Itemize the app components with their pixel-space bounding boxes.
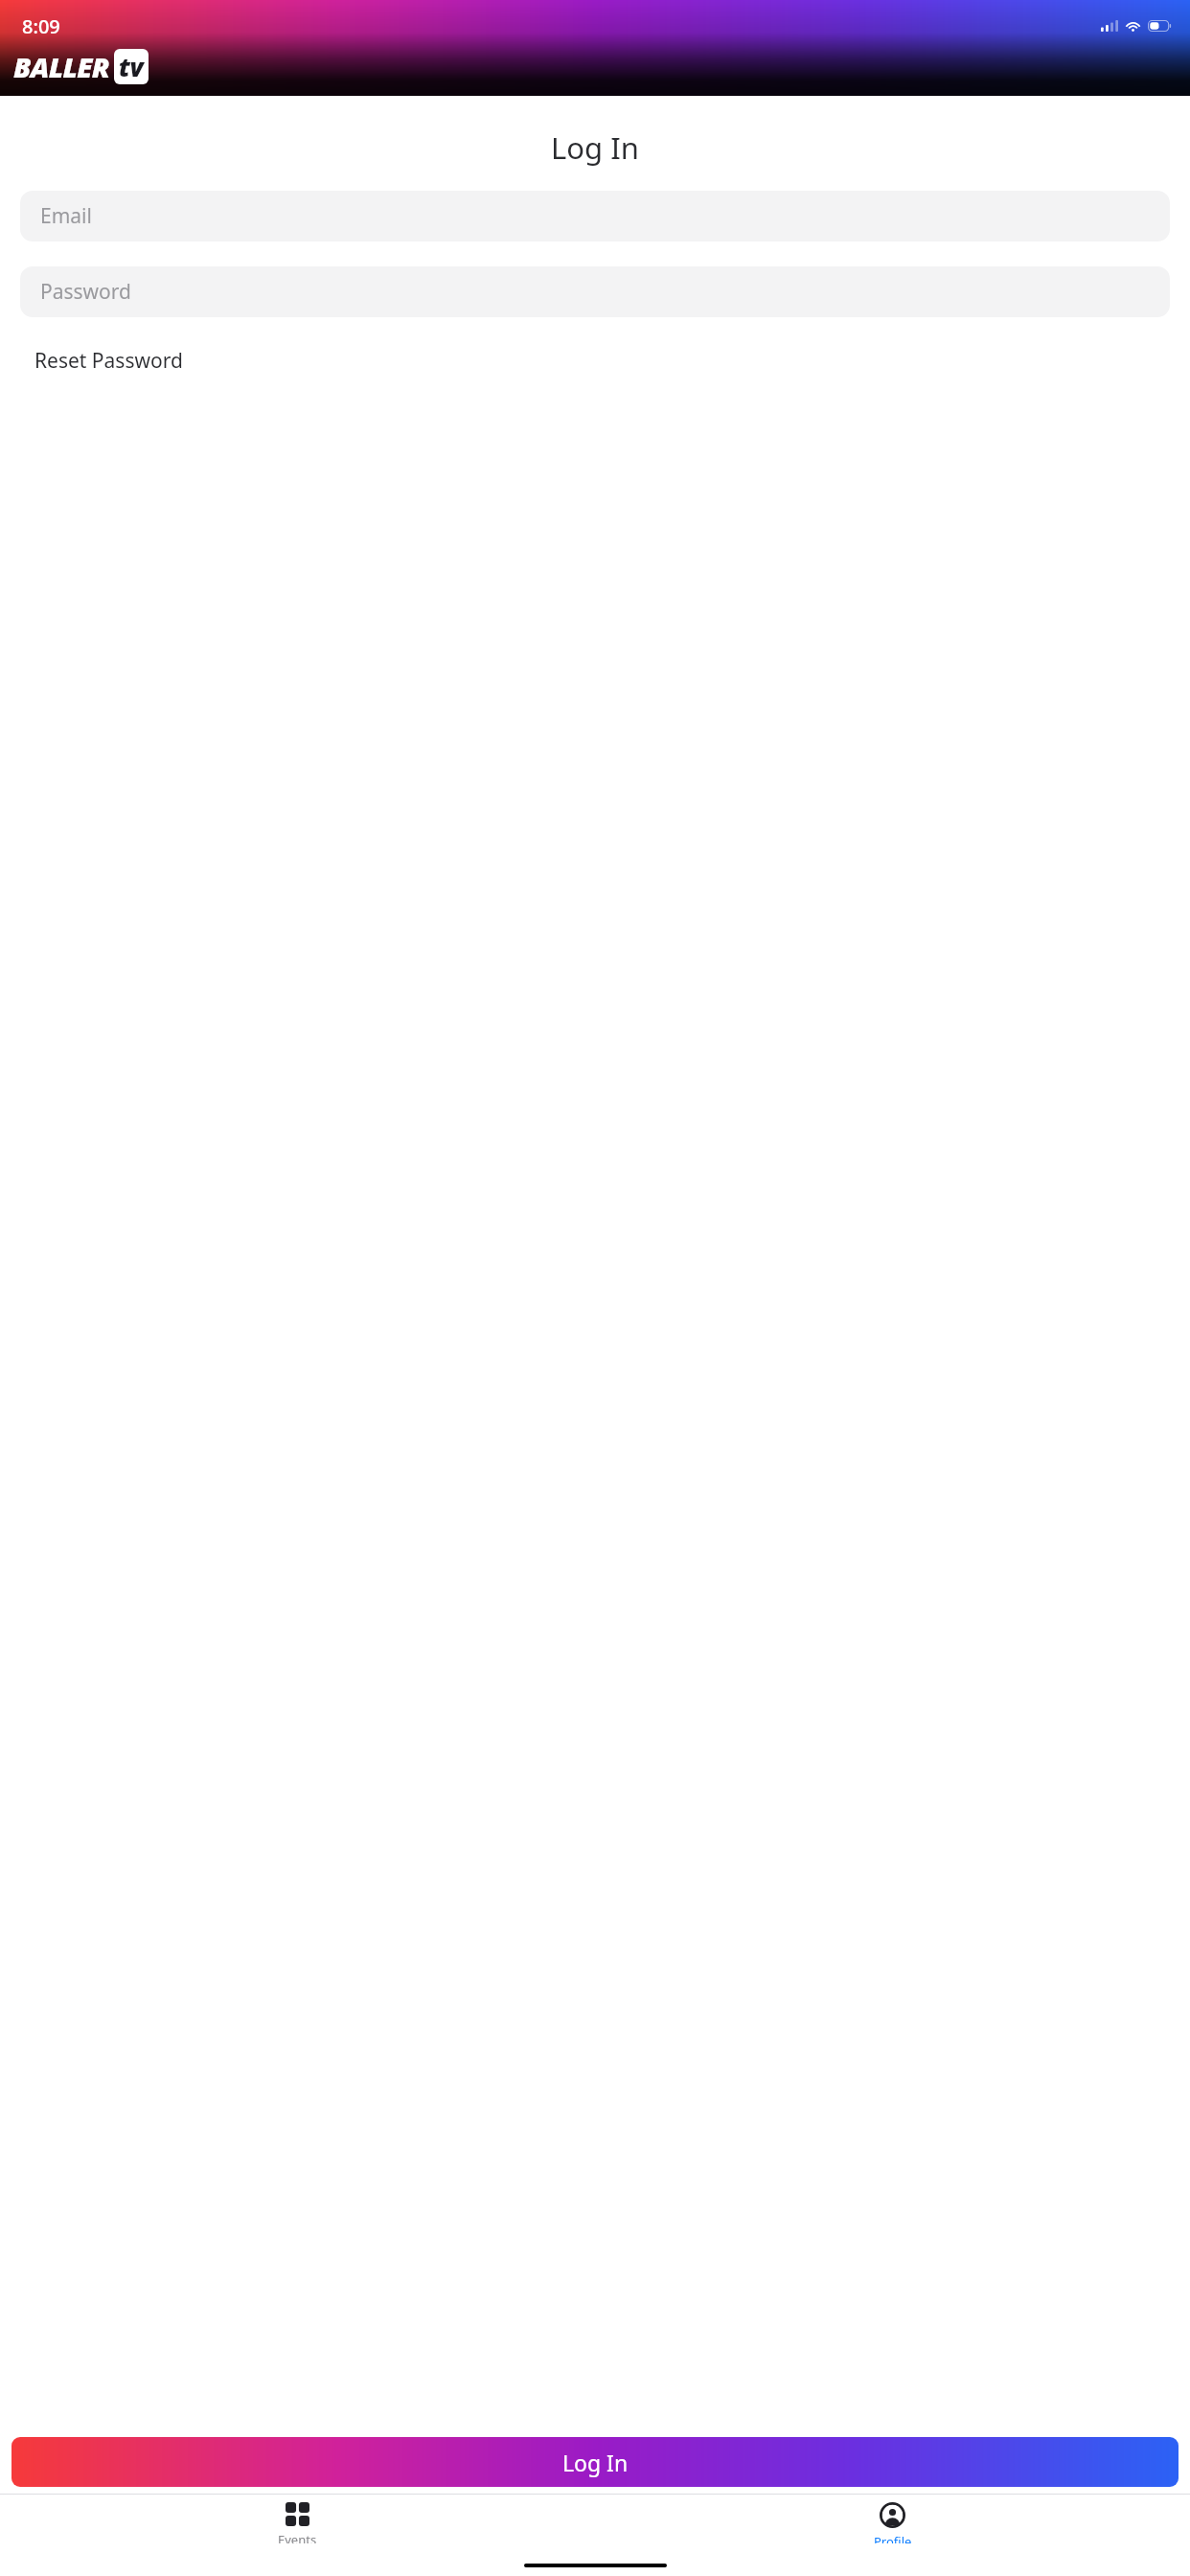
staticText: BALLER [13, 48, 110, 85]
other: Events [286, 2502, 309, 2526]
other: Profile [880, 2502, 905, 2528]
staticText: Email [40, 202, 92, 230]
button[interactable]: Log In [11, 2437, 1179, 2487]
staticText: Log In [0, 127, 1190, 168]
button[interactable]: Email [20, 191, 1170, 241]
staticText: Log In [562, 2448, 629, 2477]
staticText: Reset Password [34, 347, 183, 375]
staticText: Events [278, 2531, 317, 2543]
button[interactable]: Password [20, 266, 1170, 317]
button[interactable]: Reset Password [20, 341, 197, 380]
staticText: Password [40, 278, 131, 306]
button[interactable]: Events [0, 2502, 595, 2543]
staticText: tv [119, 50, 144, 83]
staticText: Profile [874, 2533, 912, 2543]
staticText: 8:09 [22, 13, 60, 39]
button[interactable]: Profile [595, 2502, 1190, 2543]
